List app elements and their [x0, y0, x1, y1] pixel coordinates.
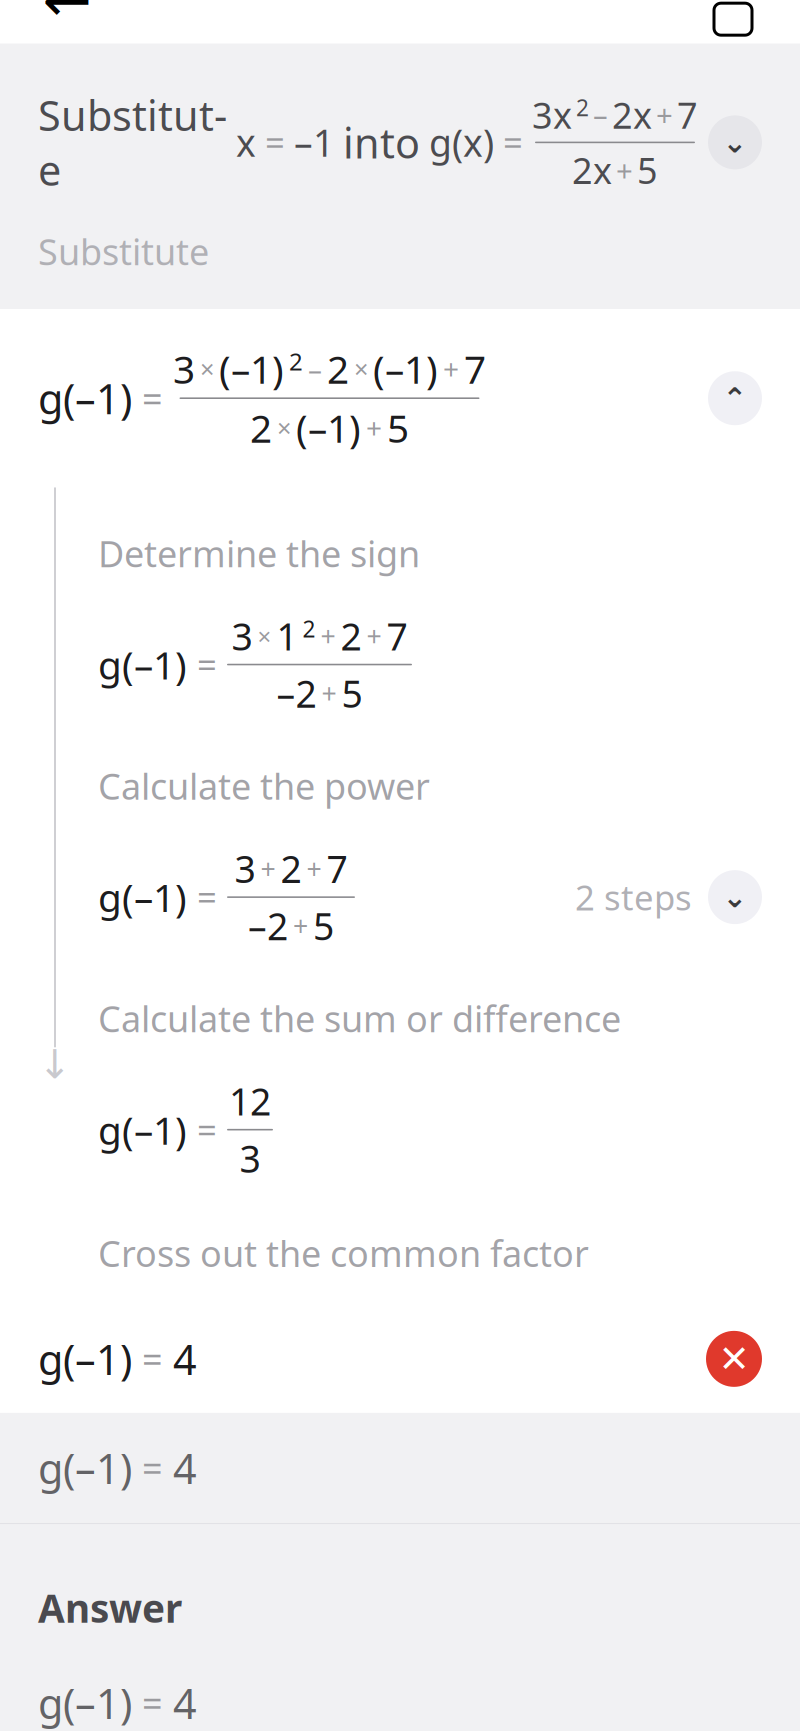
- staticText: 3: [239, 1133, 260, 1183]
- staticText: 4: [173, 1331, 197, 1386]
- staticText: –2: [248, 901, 288, 950]
- staticText: 5: [341, 668, 362, 718]
- staticText: Cross out the common factor: [98, 1229, 589, 1277]
- staticText: =: [142, 1335, 163, 1383]
- staticText: 2: [340, 611, 361, 661]
- staticText: Calculate the sum or difference: [98, 994, 621, 1042]
- staticText: g(–1): [38, 371, 132, 426]
- staticText: +: [443, 350, 459, 387]
- button[interactable]: Substitute: [0, 43, 800, 309]
- staticText: +: [260, 851, 275, 886]
- staticText: ✕: [718, 1338, 749, 1380]
- staticText: –: [308, 350, 322, 387]
- staticText: 12: [229, 1076, 271, 1126]
- staticText: ×: [354, 352, 368, 385]
- staticText: =: [197, 874, 217, 920]
- staticText: –1: [294, 118, 334, 167]
- staticText: ↓: [38, 1042, 72, 1087]
- staticText: 7: [677, 91, 698, 139]
- staticText: ⌃: [722, 382, 747, 415]
- staticText: g(–1): [98, 871, 187, 923]
- staticText: g(x): [429, 118, 494, 167]
- staticText: –2: [276, 668, 316, 718]
- staticText: +: [366, 618, 381, 654]
- staticText: ×: [200, 352, 214, 385]
- staticText: into: [343, 115, 420, 170]
- staticText: 5: [313, 901, 334, 950]
- staticText: 2: [250, 402, 272, 453]
- staticText: Answer: [38, 1582, 182, 1633]
- staticText: 2: [576, 92, 589, 122]
- staticText: 1: [276, 611, 297, 661]
- staticText: +: [366, 409, 382, 446]
- staticText: 2: [280, 844, 301, 893]
- staticText: +: [293, 908, 308, 943]
- staticText: g(–1): [38, 1440, 132, 1495]
- staticText: +: [320, 618, 335, 654]
- staticText: (–1): [296, 402, 361, 453]
- staticText: 2 steps: [575, 874, 692, 920]
- staticText: =: [503, 119, 523, 165]
- staticText: g(–1): [38, 1675, 132, 1730]
- staticText: 3x: [532, 91, 572, 139]
- staticText: 7: [464, 343, 486, 394]
- staticText: Determine the sign: [98, 529, 420, 577]
- staticText: ×: [277, 411, 291, 444]
- staticText: =: [265, 119, 285, 165]
- staticText: Substitute: [38, 227, 209, 275]
- staticText: +: [306, 851, 321, 886]
- staticText: g(–1): [98, 639, 187, 690]
- staticText: 5: [637, 146, 658, 194]
- staticText: =: [197, 1107, 217, 1153]
- staticText: g(–1): [38, 1331, 132, 1386]
- button[interactable]: Back: [36, 0, 98, 31]
- staticText: ×: [257, 620, 271, 652]
- staticText: 7: [386, 611, 407, 661]
- staticText: =: [142, 374, 163, 422]
- staticText: Substitute: [38, 87, 227, 197]
- staticText: 3: [231, 611, 252, 661]
- staticText: Calculate the power: [98, 762, 430, 810]
- staticText: 7: [326, 844, 347, 893]
- button[interactable]: Close step: [706, 1331, 762, 1387]
- staticText: ⌄: [722, 126, 747, 159]
- staticText: ↑: [718, 0, 747, 5]
- staticText: (–1): [373, 343, 438, 394]
- staticText: =: [197, 641, 217, 687]
- staticText: 3: [173, 343, 195, 394]
- staticText: +: [616, 151, 633, 190]
- staticText: x: [236, 118, 256, 167]
- button[interactable]: g(–1): [0, 309, 800, 487]
- staticText: 2x: [572, 146, 612, 194]
- staticText: g(–1): [98, 1104, 187, 1155]
- staticText: 5: [387, 402, 409, 453]
- button[interactable]: Share: [702, 0, 764, 31]
- staticText: ←: [42, 0, 91, 34]
- staticText: +: [321, 675, 336, 711]
- staticText: 2x: [612, 91, 652, 139]
- staticText: ⌄: [722, 880, 747, 914]
- staticText: (–1): [219, 343, 284, 394]
- staticText: 2: [289, 345, 303, 377]
- staticText: –: [593, 95, 608, 134]
- staticText: 3: [234, 844, 255, 893]
- staticText: +: [656, 95, 673, 134]
- staticText: 4: [173, 1675, 197, 1730]
- staticText: =: [142, 1444, 163, 1492]
- staticText: 2: [302, 614, 315, 644]
- button[interactable]: 2 steps: [575, 870, 762, 924]
- staticText: 4: [173, 1440, 197, 1495]
- staticText: 2: [327, 343, 349, 394]
- staticText: =: [142, 1679, 163, 1727]
